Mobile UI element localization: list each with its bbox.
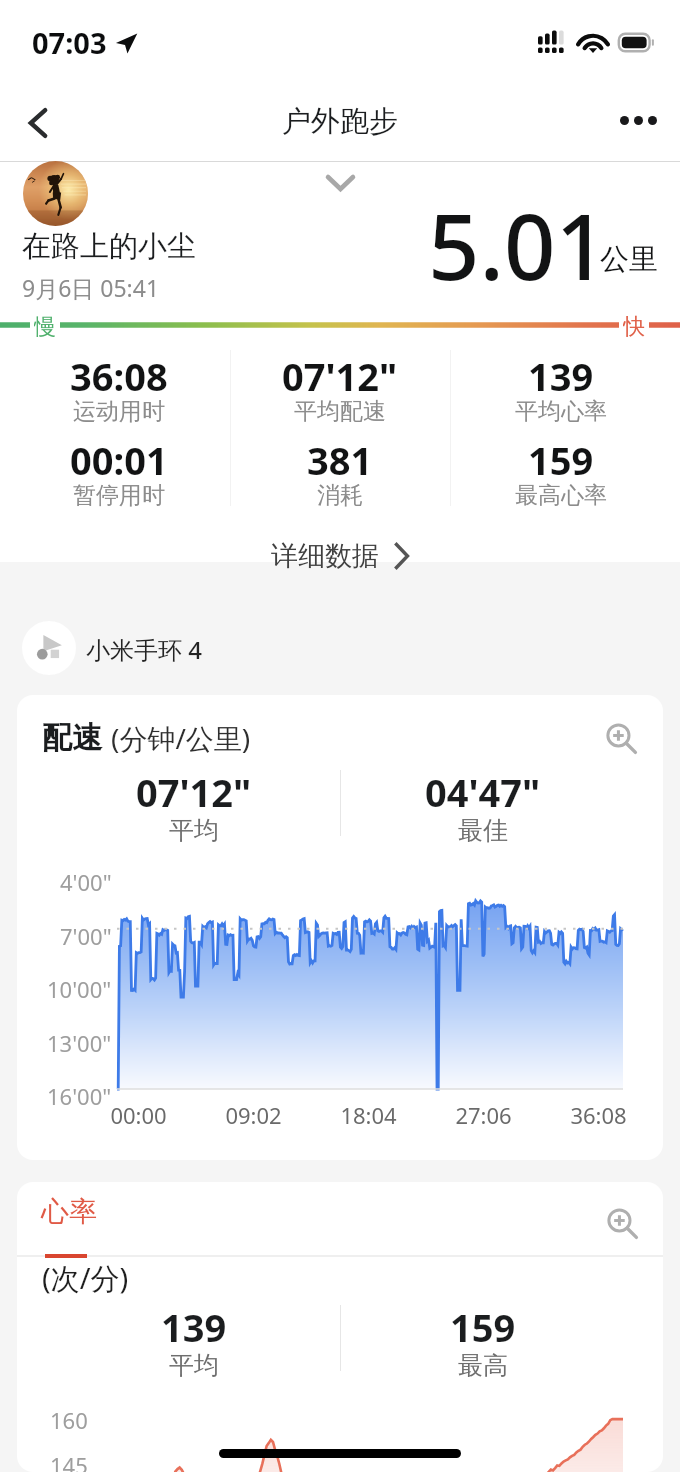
staticText: 9月6日 05:41: [22, 272, 160, 303]
staticText: 381: [307, 434, 373, 486]
staticText: 5.01: [428, 184, 607, 307]
staticText: 139: [161, 1301, 227, 1353]
button[interactable]: 小米手环 4: [22, 621, 680, 675]
staticText: 7'00": [60, 921, 112, 951]
staticText: 4'00": [60, 867, 112, 897]
staticText: 00:00: [110, 1100, 167, 1130]
staticText: 公里: [600, 241, 658, 278]
staticText: 18:04: [340, 1100, 397, 1130]
staticText: 最高心率: [515, 481, 607, 510]
staticText: 09:02: [225, 1100, 282, 1130]
staticText: 户外跑步: [282, 103, 398, 140]
staticText: 最高: [458, 1350, 508, 1381]
staticText: 消耗: [317, 481, 363, 510]
staticText: 暂停用时: [73, 481, 165, 510]
button[interactable]: More options: [610, 92, 672, 154]
staticText: 13'00": [47, 1028, 112, 1058]
staticText: (分钟/公里): [111, 719, 251, 757]
staticText: 07'12": [136, 766, 252, 818]
staticText: 159: [450, 1301, 516, 1353]
staticText: 最佳: [458, 815, 508, 846]
staticText: 04'47": [425, 766, 541, 818]
staticText: 在路上的小尘: [22, 228, 196, 265]
staticText: 运动用时: [73, 397, 165, 426]
staticText: (次/分): [42, 1258, 129, 1298]
staticText: 00:01: [70, 434, 168, 486]
button[interactable]: 详细数据: [0, 531, 680, 581]
staticText: 平均配速: [294, 397, 386, 426]
staticText: 27:06: [455, 1100, 512, 1130]
staticText: 配速: [42, 719, 102, 757]
staticText: 小米手环 4: [86, 633, 202, 666]
staticText: 159: [528, 434, 594, 486]
button[interactable]: Expand: [308, 163, 372, 203]
staticText: 07'12": [282, 350, 398, 402]
staticText: 平均: [169, 815, 219, 846]
staticText: 36:08: [70, 350, 168, 402]
staticText: 16'00": [47, 1081, 112, 1111]
staticText: 心率: [41, 1194, 97, 1229]
staticText: 139: [528, 350, 594, 402]
staticText: 平均心率: [515, 397, 607, 426]
staticText: 160: [50, 1405, 88, 1435]
button[interactable]: Zoom in: [595, 712, 647, 764]
staticText: 详细数据: [271, 539, 379, 573]
staticText: 145: [50, 1450, 88, 1472]
button[interactable]: Back: [10, 95, 66, 151]
staticText: 36:08: [570, 1100, 627, 1130]
staticText: 快: [623, 313, 645, 337]
staticText: 10'00": [47, 974, 112, 1004]
staticText: 07:03: [32, 23, 107, 62]
button[interactable]: Zoom in: [596, 1197, 648, 1249]
button[interactable]: Profile photo: [23, 161, 88, 226]
staticText: 慢: [34, 313, 56, 337]
staticText: 平均: [169, 1350, 219, 1381]
